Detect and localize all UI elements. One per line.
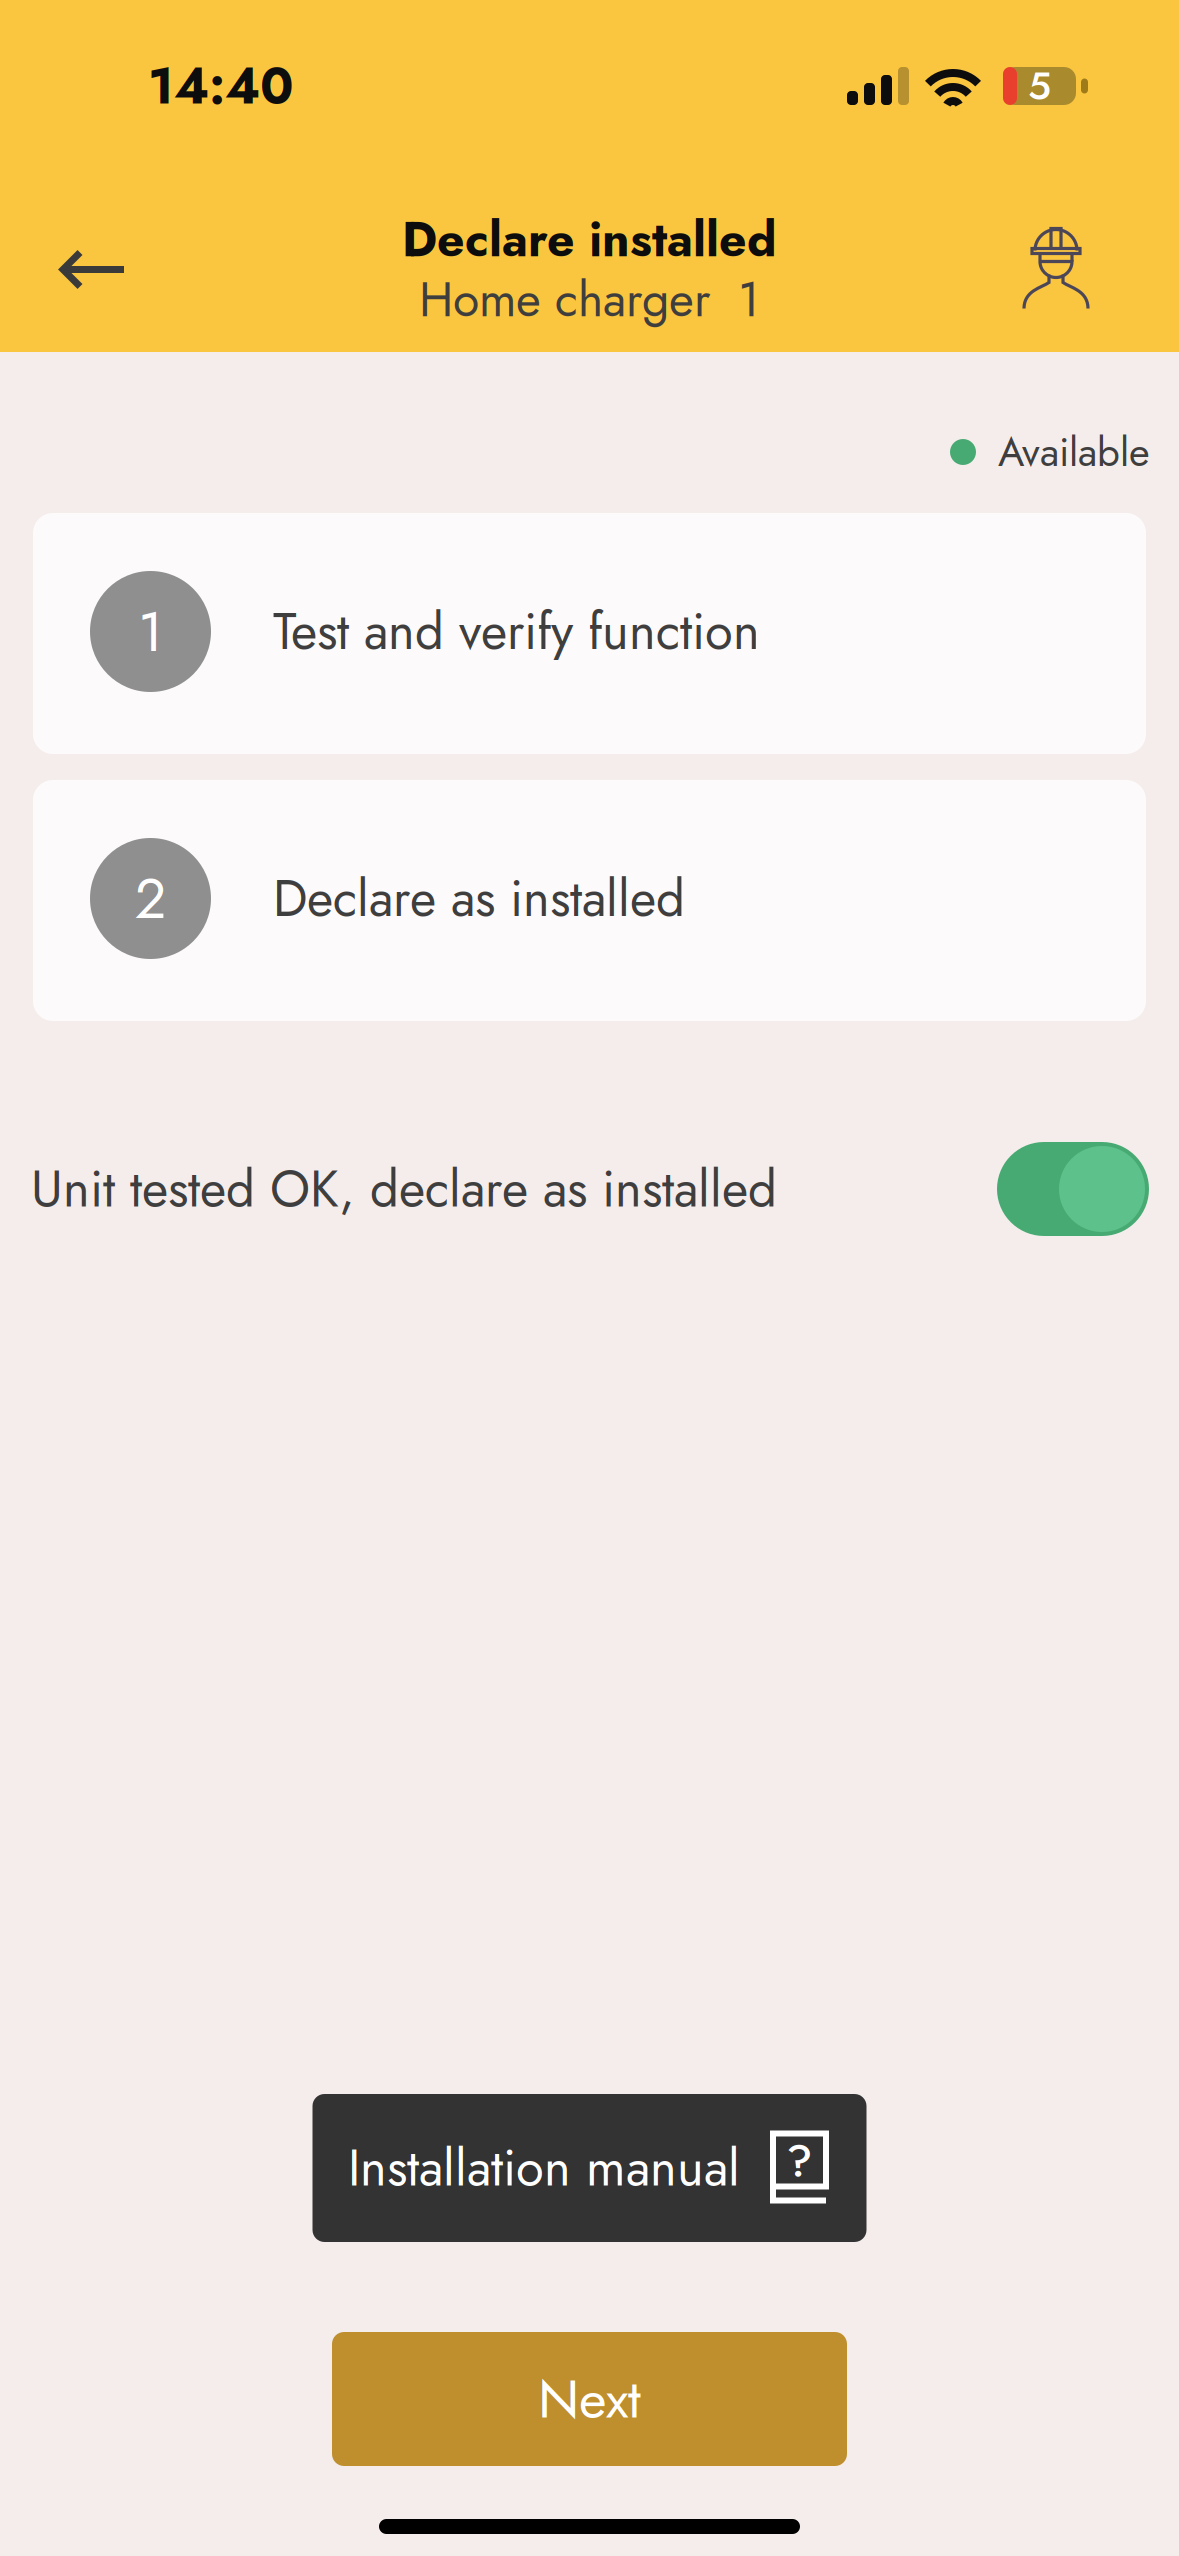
staticText: Available — [998, 423, 1150, 481]
staticText: Installation manual — [348, 2131, 740, 2205]
staticText: Next — [538, 2360, 641, 2438]
button[interactable]: Next — [332, 2332, 847, 2466]
staticText: Declare installed — [402, 205, 777, 274]
staticText: 5 — [1028, 58, 1051, 114]
button[interactable]: 2 — [33, 780, 1146, 1021]
staticText: Unit tested OK, declare as installed — [31, 1152, 777, 1226]
button[interactable]: Installer profile — [991, 203, 1121, 333]
staticText: 2 — [134, 858, 166, 939]
staticText: Declare as installed — [273, 862, 685, 935]
staticText: 1 — [138, 591, 163, 672]
staticText: Home charger 1 — [419, 265, 760, 334]
button[interactable]: Unit tested OK, declare as installed — [997, 1142, 1149, 1236]
staticText: Test and verify function — [273, 595, 760, 668]
button[interactable]: Back — [28, 204, 158, 334]
button[interactable]: Installation manual — [312, 2094, 866, 2242]
staticText: ? — [786, 2128, 813, 2193]
button[interactable]: 1 — [33, 513, 1146, 754]
staticText: 14:40 — [148, 49, 294, 123]
